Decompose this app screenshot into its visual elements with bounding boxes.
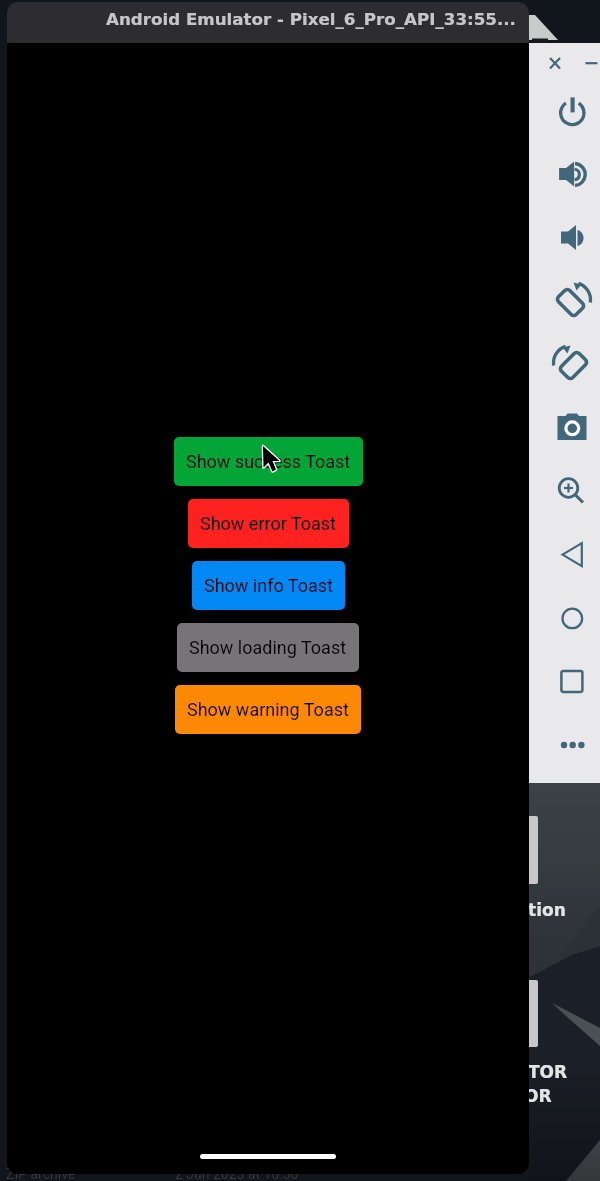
- staticText: Show warning Toast: [187, 699, 349, 720]
- staticText: TOR: [528, 1062, 568, 1082]
- button[interactable]: Show info Toast: [192, 561, 345, 610]
- staticText: Show info Toast: [204, 575, 333, 596]
- button[interactable]: Show warning Toast: [175, 685, 361, 734]
- staticText: 2 Jun 2023 at 10:30: [175, 1166, 299, 1181]
- staticText: tion: [528, 900, 566, 920]
- other: Home: [200, 1154, 336, 1159]
- other: Emulator controls: [529, 43, 600, 783]
- staticText: Show loading Toast: [189, 637, 347, 658]
- staticText: Android Emulator - Pixel_6_Pro_API_33:55…: [106, 9, 516, 28]
- staticText: ZIP archive: [6, 1166, 76, 1181]
- button[interactable]: Show loading Toast: [177, 623, 359, 672]
- staticText: Show success Toast: [186, 451, 351, 472]
- button[interactable]: Show success Toast: [174, 437, 363, 486]
- staticText: Show error Toast: [200, 513, 337, 534]
- staticText: OR: [524, 1086, 552, 1106]
- button[interactable]: Show error Toast: [188, 499, 349, 548]
